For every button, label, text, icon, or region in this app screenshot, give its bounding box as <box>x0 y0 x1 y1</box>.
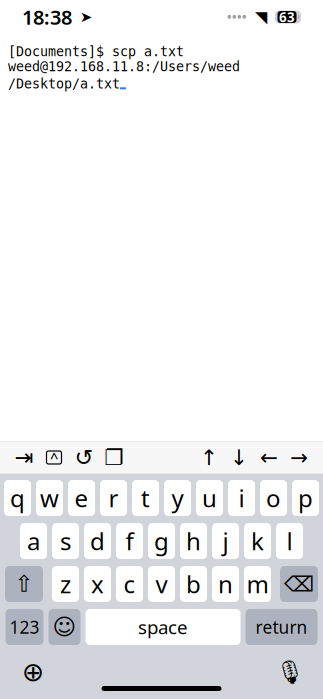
staticText: •••• <box>227 9 247 25</box>
button[interactable]: t <box>132 480 159 516</box>
staticText: y <box>171 482 183 514</box>
staticText: ❐ <box>104 445 123 470</box>
staticText: h <box>186 525 201 557</box>
button[interactable]: Paste <box>100 441 128 473</box>
staticText: return <box>255 615 307 638</box>
button[interactable]: j <box>212 523 239 559</box>
staticText: ^ <box>50 448 58 467</box>
staticText: j <box>222 525 228 557</box>
button[interactable]: i <box>228 480 255 516</box>
staticText: [Documents]$ scp a.txt weed@192.168.11.8… <box>8 44 240 74</box>
button[interactable]: space <box>85 609 240 645</box>
button[interactable]: Numbers <box>5 609 43 645</box>
button[interactable]: Left <box>255 441 283 473</box>
staticText: m <box>246 568 268 600</box>
staticText: 63 <box>279 8 295 26</box>
button[interactable]: g <box>148 523 175 559</box>
staticText: v <box>155 568 167 600</box>
button[interactable]: Emoji <box>48 609 80 645</box>
staticText: s <box>60 525 71 557</box>
staticText: p <box>298 482 313 514</box>
staticText: c <box>123 568 135 600</box>
button[interactable]: y <box>164 480 191 516</box>
button[interactable]: Delete <box>280 566 318 602</box>
button[interactable]: n <box>212 566 239 602</box>
staticText: ↑ <box>200 445 218 470</box>
button[interactable]: Shift <box>5 566 43 602</box>
button[interactable]: History <box>70 441 98 473</box>
staticText: 18:38 <box>22 4 72 30</box>
staticText: r <box>108 482 118 514</box>
button[interactable]: v <box>148 566 175 602</box>
button[interactable]: Right <box>285 441 313 473</box>
button[interactable]: Down <box>225 441 253 473</box>
staticText: x <box>91 568 104 600</box>
button[interactable]: q <box>4 480 31 516</box>
button[interactable]: f <box>116 523 143 559</box>
button[interactable]: s <box>52 523 79 559</box>
staticText: /Desktop/a.txt <box>8 76 120 91</box>
button[interactable]: z <box>52 566 79 602</box>
staticText: ➤ <box>80 9 92 25</box>
button[interactable]: c <box>116 566 143 602</box>
button[interactable]: b <box>180 566 207 602</box>
staticText: z <box>60 568 71 600</box>
button[interactable]: l <box>276 523 303 559</box>
staticText: ⊕ <box>22 657 44 687</box>
button[interactable]: a <box>20 523 47 559</box>
staticText: d <box>90 525 105 557</box>
staticText: ⌫ <box>284 572 314 596</box>
button[interactable]: p <box>292 480 319 516</box>
staticText: ⇧ <box>14 571 33 597</box>
staticText: t <box>141 482 150 514</box>
button[interactable]: e <box>68 480 95 516</box>
staticText: ☺ <box>52 614 76 640</box>
staticText: ↓ <box>230 445 248 470</box>
staticText: w <box>40 482 59 514</box>
staticText: ◥ <box>255 8 267 26</box>
button[interactable]: x <box>84 566 111 602</box>
staticText: g <box>154 525 169 557</box>
button[interactable]: r <box>100 480 127 516</box>
button[interactable]: Up <box>195 441 223 473</box>
staticText: k <box>251 525 264 557</box>
staticText: i <box>238 482 244 514</box>
staticText: ← <box>260 445 278 470</box>
staticText: 🎙 <box>275 659 304 685</box>
button[interactable]: Next keyboard <box>14 653 52 691</box>
staticText: q <box>10 482 25 514</box>
staticText: ⇥ <box>14 445 33 470</box>
staticText: o <box>266 482 281 514</box>
staticText: e <box>74 482 88 514</box>
button[interactable]: w <box>36 480 63 516</box>
staticText: b <box>186 568 201 600</box>
button[interactable]: Dictation <box>271 653 309 691</box>
staticText: a <box>27 525 40 557</box>
staticText: 123 <box>9 615 39 638</box>
button[interactable]: d <box>84 523 111 559</box>
staticText: n <box>218 568 233 600</box>
staticText: space <box>138 615 188 639</box>
button[interactable]: h <box>180 523 207 559</box>
button[interactable]: u <box>196 480 223 516</box>
button[interactable]: Control <box>40 441 68 473</box>
button[interactable]: k <box>244 523 271 559</box>
staticText: u <box>202 482 217 514</box>
staticText: l <box>286 525 292 557</box>
button[interactable]: Tab <box>10 441 38 473</box>
staticText: → <box>290 445 308 470</box>
button[interactable]: m <box>244 566 271 602</box>
staticText: f <box>125 525 133 557</box>
button[interactable]: o <box>260 480 287 516</box>
staticText: ↺ <box>74 445 93 470</box>
button[interactable]: Return <box>245 609 317 645</box>
